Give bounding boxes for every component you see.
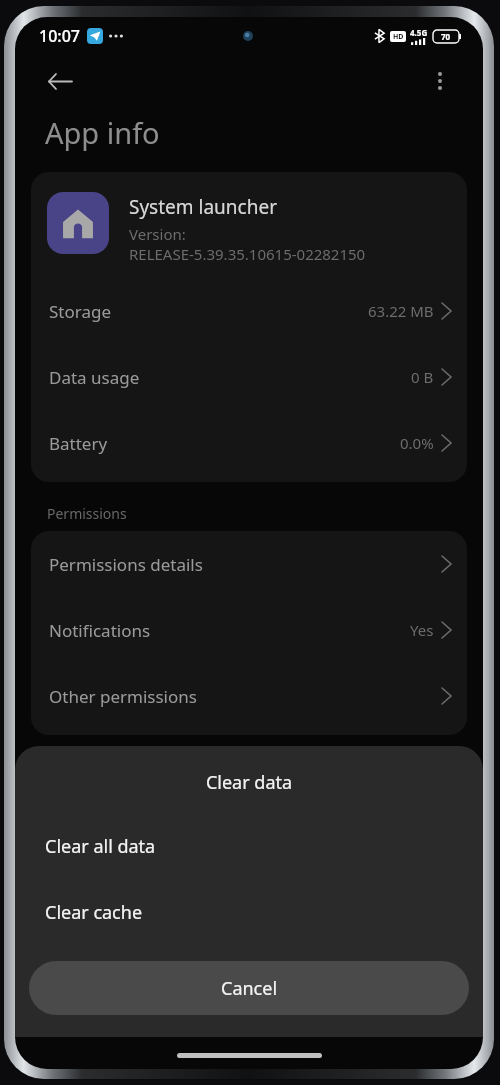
button[interactable]: Storage	[31, 278, 467, 344]
staticText: Permissions details	[49, 553, 203, 576]
button[interactable]: Clear cache	[15, 879, 483, 945]
staticText: 4.5G	[410, 27, 428, 38]
button[interactable]: Data usage	[31, 344, 467, 410]
button[interactable]: Battery	[31, 410, 467, 476]
staticText: HD	[393, 32, 404, 42]
staticText: 10:07	[39, 25, 80, 47]
staticText: Data usage	[49, 366, 140, 389]
button[interactable]: More options	[423, 64, 457, 98]
staticText: Storage	[49, 300, 112, 323]
staticText: Clear data	[15, 770, 483, 795]
button[interactable]: Permissions details	[31, 531, 467, 597]
staticText: RELEASE-5.39.35.10615-02282150	[129, 244, 366, 264]
button[interactable]: Other permissions	[31, 663, 467, 729]
staticText: Other permissions	[49, 685, 197, 708]
button[interactable]: Back	[43, 64, 77, 98]
staticText: 0 B	[411, 367, 434, 387]
staticText: Permissions	[47, 504, 127, 523]
staticText: Cancel	[221, 976, 278, 1001]
button[interactable]: Cancel	[29, 961, 469, 1015]
button[interactable]: Notifications	[31, 597, 467, 663]
staticText: Battery	[49, 432, 108, 455]
staticText: Clear cache	[45, 900, 143, 925]
button[interactable]: Clear all data	[15, 813, 483, 879]
staticText: Clear all data	[45, 834, 156, 859]
button[interactable]: System launcher	[31, 172, 467, 278]
staticText: App info	[45, 113, 160, 152]
staticText: 0.0%	[400, 433, 434, 453]
staticText: System launcher	[129, 194, 277, 220]
staticText: Notifications	[49, 619, 151, 642]
staticText: Version:	[129, 224, 186, 244]
staticText: Yes	[410, 620, 434, 640]
staticText: 63.22 MB	[368, 301, 434, 321]
staticText: 70	[441, 31, 451, 42]
